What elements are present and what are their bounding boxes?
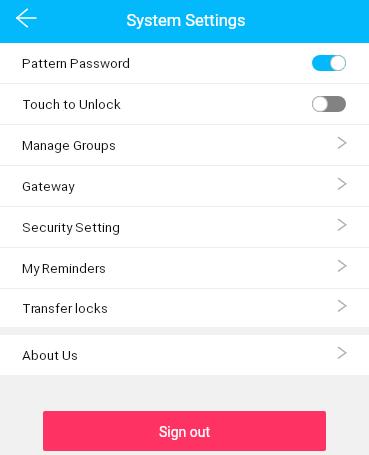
staticText: Pattern Password <box>22 55 130 71</box>
button[interactable]: Sign out <box>43 411 326 451</box>
button[interactable]: Manage Groups <box>0 125 369 165</box>
staticText: System Settings <box>126 11 246 30</box>
staticText: Sign out <box>159 424 211 440</box>
button[interactable]: Pattern Password <box>0 43 369 83</box>
staticText: Manage Groups <box>22 137 116 153</box>
button[interactable]: Transfer locks <box>0 289 369 327</box>
staticText: Security Setting <box>22 219 120 235</box>
button[interactable]: Disabled <box>312 96 346 112</box>
button[interactable]: Enabled <box>312 55 346 71</box>
button[interactable]: Back <box>11 0 42 35</box>
button[interactable]: Security Setting <box>0 207 369 247</box>
staticText: About Us <box>22 347 78 363</box>
button[interactable]: My Reminders <box>0 248 369 288</box>
staticText: Gateway <box>22 178 74 194</box>
button[interactable]: About Us <box>0 335 369 375</box>
button[interactable]: Touch to Unlock <box>0 84 369 124</box>
staticText: My Reminders <box>22 260 106 276</box>
staticText: Transfer locks <box>22 300 109 316</box>
staticText: Touch to Unlock <box>22 96 122 112</box>
button[interactable]: Gateway <box>0 166 369 206</box>
